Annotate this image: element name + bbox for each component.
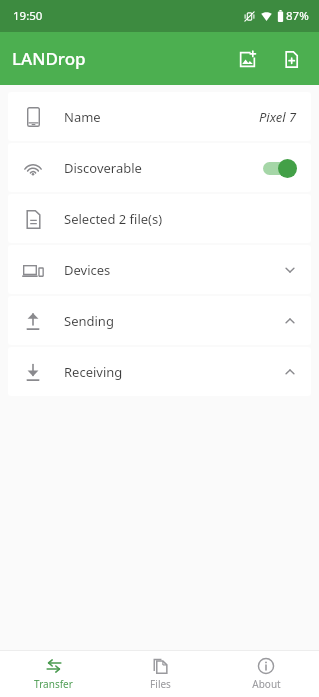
- staticText: Pixel 7: [259, 108, 297, 126]
- button[interactable]: Files: [107, 651, 213, 697]
- button[interactable]: Add file: [269, 37, 313, 81]
- staticText: Discoverable: [64, 159, 261, 177]
- staticText: 19:50: [13, 8, 43, 24]
- staticText: Sending: [64, 312, 283, 330]
- button[interactable]: About: [213, 651, 319, 697]
- staticText: Transfer: [34, 677, 73, 691]
- staticText: Receiving: [64, 363, 283, 381]
- button[interactable]: Name: [8, 92, 311, 141]
- button[interactable]: Add image: [225, 37, 269, 81]
- button[interactable]: Discoverable: [8, 143, 311, 192]
- button[interactable]: Devices: [8, 245, 311, 294]
- staticText: About: [252, 677, 281, 691]
- staticText: Name: [64, 108, 259, 126]
- button[interactable]: Sending: [8, 296, 311, 345]
- staticText: Selected 2 file(s): [64, 210, 297, 228]
- button[interactable]: Selected 2 file(s): [8, 194, 311, 243]
- staticText: LANDrop: [12, 47, 86, 70]
- staticText: 87%: [286, 8, 309, 24]
- button[interactable]: Transfer: [0, 651, 107, 697]
- button[interactable]: Discoverable toggle: [261, 158, 297, 178]
- staticText: Files: [150, 677, 171, 691]
- button[interactable]: Receiving: [8, 347, 311, 396]
- staticText: Devices: [64, 261, 283, 279]
